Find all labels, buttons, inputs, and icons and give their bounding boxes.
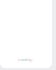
- staticText: Loading...: [18, 57, 34, 62]
